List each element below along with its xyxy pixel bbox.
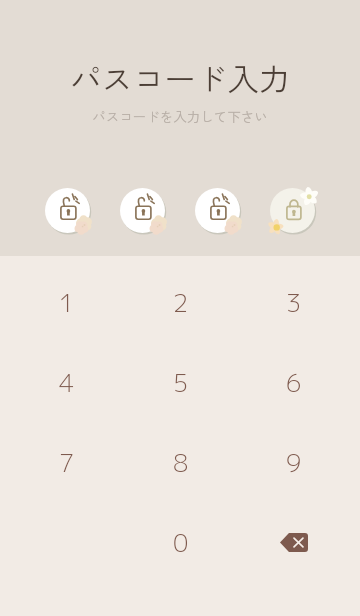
button[interactable]: Empty digit (120, 188, 165, 233)
button[interactable]: 0 (124, 502, 237, 582)
button[interactable]: 9 (237, 422, 350, 502)
staticText: パスコードを入力して下さい (0, 106, 360, 126)
staticText: 7 (59, 445, 75, 480)
button[interactable]: 5 (124, 342, 237, 422)
button[interactable]: 2 (124, 262, 237, 342)
staticText: 9 (286, 445, 302, 480)
button[interactable]: 7 (10, 422, 124, 502)
staticText: 5 (173, 365, 189, 400)
button[interactable]: Entered digit (270, 188, 315, 233)
staticText: 3 (286, 285, 302, 320)
button[interactable]: 1 (10, 262, 124, 342)
button[interactable]: Empty digit (195, 188, 240, 233)
button[interactable]: 3 (237, 262, 350, 342)
button[interactable]: 4 (10, 342, 124, 422)
button[interactable]: 6 (237, 342, 350, 422)
button[interactable]: 8 (124, 422, 237, 502)
staticText: 1 (59, 285, 75, 320)
button[interactable]: Empty digit (45, 188, 90, 233)
staticText: 4 (59, 365, 75, 400)
staticText: 6 (286, 365, 302, 400)
staticText: 0 (173, 525, 189, 560)
other: Backspace (272, 520, 316, 564)
staticText: 2 (173, 285, 189, 320)
button[interactable]: Backspace (237, 502, 350, 582)
staticText: パスコード入力 (0, 54, 360, 100)
staticText: 8 (173, 445, 189, 480)
